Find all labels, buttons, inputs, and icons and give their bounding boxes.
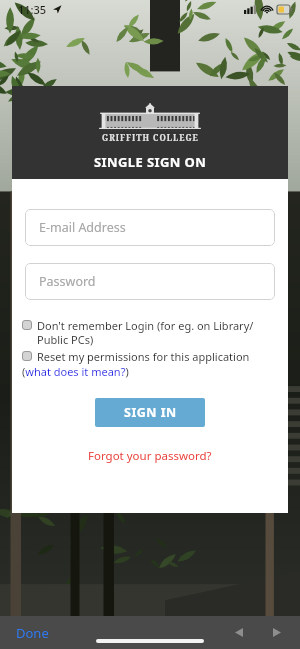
button[interactable]: SIGN IN [95, 398, 205, 427]
staticText: Don't remember Login (for eg. on Library… [37, 318, 278, 347]
button[interactable]: E-mail Address [25, 209, 275, 246]
staticText: Reset my permissions for this applicatio… [37, 349, 250, 364]
staticText: 11:35 [18, 2, 47, 17]
staticText: E-mail Address [39, 219, 126, 236]
button[interactable]: Don't remember Login (for eg. on Library… [22, 318, 278, 347]
button[interactable]: Reset my permissions for this applicatio… [22, 349, 278, 364]
staticText: SIGN IN [124, 404, 177, 421]
staticText: (what does it mean?) [22, 364, 129, 379]
staticText: Done [16, 624, 49, 642]
button[interactable]: Forgot your password? [82, 446, 218, 466]
button[interactable]: Forward [268, 623, 286, 642]
staticText: GRIFFITH COLLEGE [102, 132, 199, 143]
staticText: SINGLE SIGN ON [94, 153, 207, 171]
staticText: Forgot your password? [88, 448, 212, 464]
button[interactable]: Password [25, 263, 275, 300]
staticText: Password [39, 273, 96, 290]
button[interactable]: Done [10, 620, 55, 646]
button[interactable]: Back [230, 623, 248, 642]
button[interactable]: (what does it mean?) [22, 364, 129, 379]
